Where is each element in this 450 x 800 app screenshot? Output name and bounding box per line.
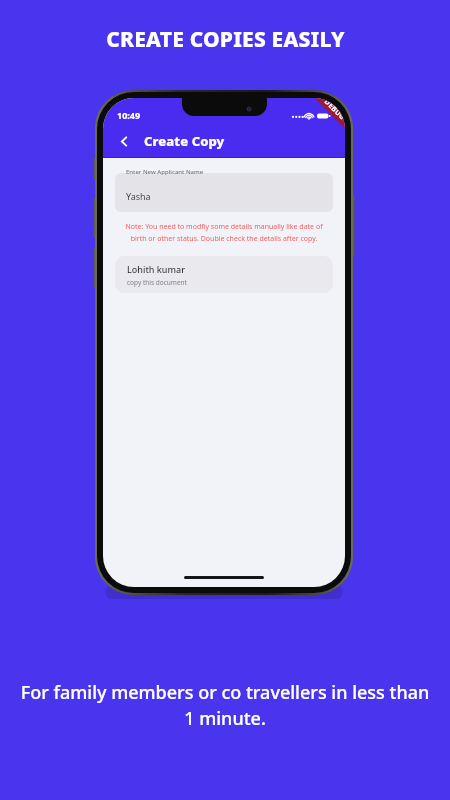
staticText: 10:49 — [117, 109, 141, 121]
staticText: CREATE COPIES EASILY — [106, 25, 345, 54]
button[interactable]: Yasha — [115, 173, 333, 212]
staticText: Lohith kumar — [127, 263, 185, 275]
staticText: Yasha — [126, 190, 151, 202]
staticText: copy this document — [127, 278, 187, 287]
staticText: For family members or co travellers in l… — [18, 680, 432, 731]
button[interactable]: Back — [111, 128, 137, 154]
button[interactable]: Lohith kumar — [115, 256, 333, 293]
staticText: Note: You need to modfiy some details ma… — [117, 222, 331, 243]
staticText: Enter New Applicant Name — [126, 168, 204, 176]
staticText: DEBUG — [322, 98, 345, 123]
staticText: Create Copy — [144, 132, 225, 150]
